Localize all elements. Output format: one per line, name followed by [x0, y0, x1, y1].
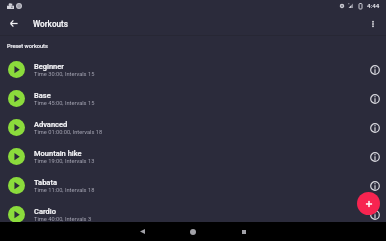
staticText: Cardio	[34, 207, 56, 216]
staticText: Advanced	[34, 120, 68, 129]
button[interactable]: Info	[365, 60, 385, 80]
button[interactable]: Info	[365, 205, 385, 225]
button[interactable]: Info	[365, 118, 385, 138]
staticText: Time 40:00, Intervals 3	[34, 216, 92, 223]
staticText: Beginner	[34, 62, 64, 71]
staticText: Time 19:00, Intervals 13	[34, 158, 95, 165]
button[interactable]: Back	[127, 222, 157, 241]
button[interactable]: Tabata	[0, 171, 386, 200]
button[interactable]: Recents	[229, 222, 259, 241]
staticText: Base	[34, 91, 51, 100]
button[interactable]: More options	[363, 14, 383, 34]
button[interactable]: Base	[0, 84, 386, 113]
staticText: Preset workouts	[7, 43, 48, 50]
staticText: Workouts	[33, 19, 69, 29]
button[interactable]: Cardio	[0, 200, 386, 229]
staticText: Mountain hike	[34, 149, 82, 158]
button[interactable]: Info	[365, 147, 385, 167]
button[interactable]: Advanced	[0, 113, 386, 142]
button[interactable]: Info	[365, 176, 385, 196]
staticText: 4:44	[367, 2, 380, 9]
button[interactable]: Home	[178, 222, 208, 241]
button[interactable]: Info	[365, 89, 385, 109]
staticText: Tabata	[34, 178, 57, 187]
staticText: Time 01:00:00, Intervals 18	[34, 129, 103, 136]
button[interactable]: Beginner	[0, 55, 386, 84]
staticText: Time 45:00, Intervals 15	[34, 100, 95, 107]
button[interactable]: Mountain hike	[0, 142, 386, 171]
button[interactable]: Back	[4, 14, 24, 34]
staticText: Time 30:00, Intervals 15	[34, 71, 95, 78]
button[interactable]: Add workout	[357, 192, 380, 215]
staticText: Time 11:00, Intervals 18	[34, 187, 95, 194]
